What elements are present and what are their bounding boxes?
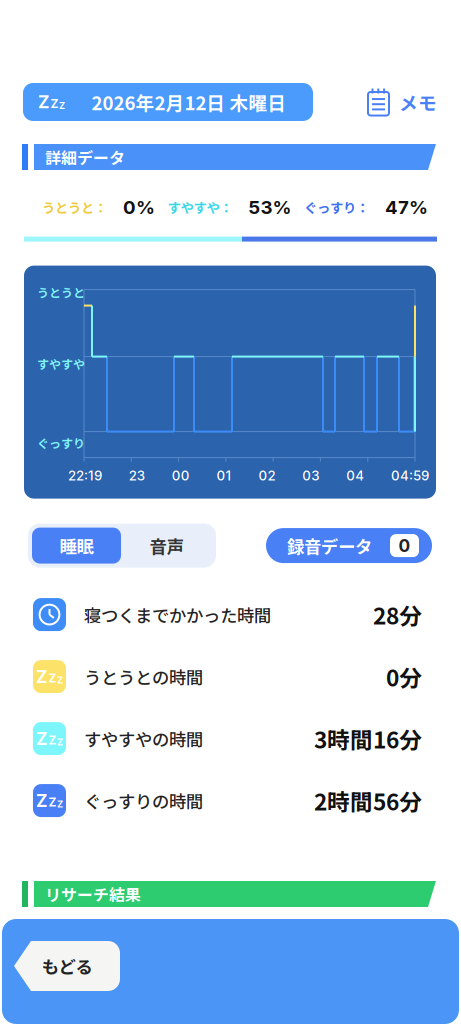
staticText: うとうとの時間	[84, 664, 203, 689]
staticText: うとうと：	[42, 198, 107, 217]
staticText: Z	[59, 100, 65, 111]
staticText: うとうと	[37, 284, 85, 301]
staticText: 03	[302, 468, 319, 484]
button[interactable]: Z	[0, 708, 461, 770]
staticText: Z	[48, 733, 56, 747]
staticText: 2時間56分	[314, 784, 422, 817]
staticText: Z	[48, 671, 56, 685]
staticText: すやすや：	[167, 198, 232, 217]
button[interactable]: 寝つくまでかかった時間	[0, 584, 461, 646]
staticText: 01	[217, 468, 232, 484]
staticText: 録音データ	[287, 533, 372, 558]
staticText: ぐっすり：	[304, 198, 369, 217]
staticText: 23	[129, 468, 145, 484]
staticText: 3時間16分	[314, 722, 422, 755]
staticText: 音声	[149, 533, 183, 558]
button[interactable]: Z	[0, 646, 461, 708]
staticText: ぐっすり	[37, 434, 85, 452]
staticText: 22:19	[68, 468, 102, 484]
staticText: Z	[48, 795, 56, 809]
staticText: Z	[50, 96, 58, 111]
staticText: 詳細データ	[45, 145, 125, 169]
staticText: Z	[38, 91, 50, 112]
button[interactable]: メモ	[367, 83, 437, 121]
staticText: Z	[57, 674, 63, 686]
staticText: 0%	[123, 196, 155, 219]
staticText: Z	[36, 728, 48, 749]
staticText: メモ	[399, 88, 437, 115]
staticText: 2026年2月12日 木曜日	[91, 88, 286, 115]
staticText: ぐっすりの時間	[84, 788, 203, 813]
staticText: すやすや	[37, 355, 85, 372]
button[interactable]: もどる	[14, 941, 120, 991]
staticText: リサーチ結果	[45, 882, 141, 906]
staticText: 00	[172, 468, 190, 484]
staticText: 0分	[386, 660, 422, 693]
button[interactable]: Z	[23, 83, 313, 121]
staticText: 04	[346, 468, 364, 484]
staticText: 寝つくまでかかった時間	[84, 602, 271, 627]
staticText: 53%	[248, 196, 291, 219]
staticText: 02	[258, 468, 275, 484]
button[interactable]: Z	[0, 770, 461, 832]
staticText: Z	[57, 736, 63, 748]
button[interactable]: 録音データ	[266, 528, 432, 563]
staticText: もどる	[41, 953, 92, 979]
staticText: 28分	[373, 598, 422, 631]
staticText: Z	[36, 666, 48, 687]
staticText: 睡眠	[59, 533, 93, 558]
button[interactable]: 音声	[121, 528, 212, 564]
staticText: 47%	[385, 196, 428, 219]
staticText: すやすやの時間	[84, 726, 203, 751]
staticText: Z	[36, 790, 48, 811]
staticText: Z	[57, 798, 63, 810]
staticText: 04:59	[391, 468, 429, 484]
staticText: 0	[398, 535, 410, 556]
button[interactable]: 睡眠	[32, 528, 121, 564]
